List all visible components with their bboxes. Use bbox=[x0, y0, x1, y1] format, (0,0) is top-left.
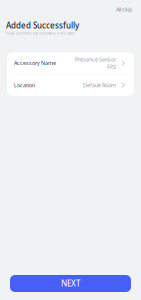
staticText: All skip bbox=[116, 6, 132, 13]
staticText: NEXT bbox=[61, 278, 80, 289]
button[interactable]: NEXT bbox=[10, 275, 131, 292]
button[interactable]: Accessory Name bbox=[7, 52, 134, 74]
staticText: Accessory Name bbox=[14, 59, 56, 67]
staticText: Please confirm the basic information of … bbox=[6, 32, 75, 35]
staticText: Added Successfully bbox=[6, 20, 79, 31]
staticText: Default Room bbox=[82, 82, 115, 89]
staticText: Location bbox=[14, 82, 35, 89]
button[interactable]: Location bbox=[7, 74, 134, 96]
button[interactable]: All skip bbox=[111, 3, 141, 16]
staticText: Presence Sensor FP2 bbox=[74, 56, 115, 70]
